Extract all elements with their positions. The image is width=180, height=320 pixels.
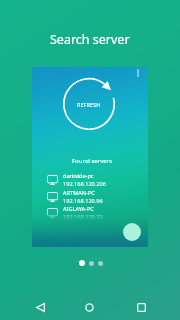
button[interactable]: Recent apps	[129, 295, 153, 319]
button[interactable]: REFRESH	[59, 74, 119, 134]
staticText: AIGLAYA-PC	[63, 205, 94, 213]
staticText: darkside-pc	[63, 172, 94, 180]
button[interactable]: AIGLAYA-PC	[47, 205, 137, 220]
button[interactable]: Back	[28, 295, 52, 319]
button[interactable]: More options	[132, 67, 144, 79]
staticText: 192.168.120.22	[63, 213, 103, 220]
staticText: Search server	[50, 31, 130, 48]
staticText: ARTMAN-PC	[63, 189, 95, 197]
button[interactable]: Add server	[123, 223, 141, 241]
button[interactable]: Home	[77, 295, 101, 319]
button[interactable]: ARTMAN-PC	[47, 189, 137, 204]
staticText: 192.168.120.206	[63, 180, 106, 187]
staticText: Found servers	[72, 157, 112, 165]
button[interactable]: darkside-pc	[47, 172, 137, 187]
staticText: 192.168.120.96	[63, 197, 103, 204]
staticText: REFRESH	[77, 101, 101, 108]
